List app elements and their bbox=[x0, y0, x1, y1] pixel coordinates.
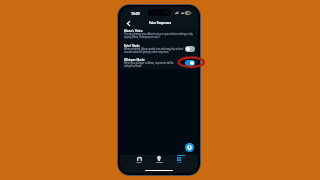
staticText: whispered back. bbox=[124, 64, 142, 68]
staticText: Home bbox=[136, 161, 142, 163]
staticText: Alexa's Voice bbox=[124, 29, 143, 33]
staticText: When you whisper to Alexa, responses wil… bbox=[124, 61, 174, 65]
button[interactable]: Brief Mode bbox=[185, 46, 195, 52]
button[interactable]: Whisper Mode bbox=[185, 60, 195, 66]
staticText: sound instead of giving a voice response… bbox=[124, 50, 169, 54]
button[interactable]: Alexa assistant bbox=[185, 143, 194, 152]
button[interactable]: More bbox=[169, 156, 189, 165]
staticText: When enabled, Alexa speaks less and may … bbox=[124, 47, 184, 51]
button[interactable]: Alexa's Voice bbox=[120, 27, 198, 41]
staticText: More bbox=[177, 161, 182, 163]
staticText: Brief Mode bbox=[124, 44, 140, 48]
staticText: Voice Responses bbox=[149, 21, 172, 25]
staticText: saying “Alexa, change your voice” bbox=[124, 35, 161, 39]
staticText: You can change your Alexa's voice on you… bbox=[124, 32, 193, 36]
button[interactable]: Brief Mode bbox=[120, 42, 198, 56]
button[interactable]: Whisper Mode bbox=[120, 56, 198, 70]
staticText: Devices bbox=[156, 161, 163, 163]
button[interactable]: Home bbox=[129, 156, 149, 165]
button[interactable]: Back bbox=[124, 18, 132, 26]
staticText: Whisper Mode bbox=[124, 58, 145, 62]
staticText: 10:09 bbox=[131, 11, 140, 16]
button[interactable]: Devices bbox=[149, 156, 169, 165]
